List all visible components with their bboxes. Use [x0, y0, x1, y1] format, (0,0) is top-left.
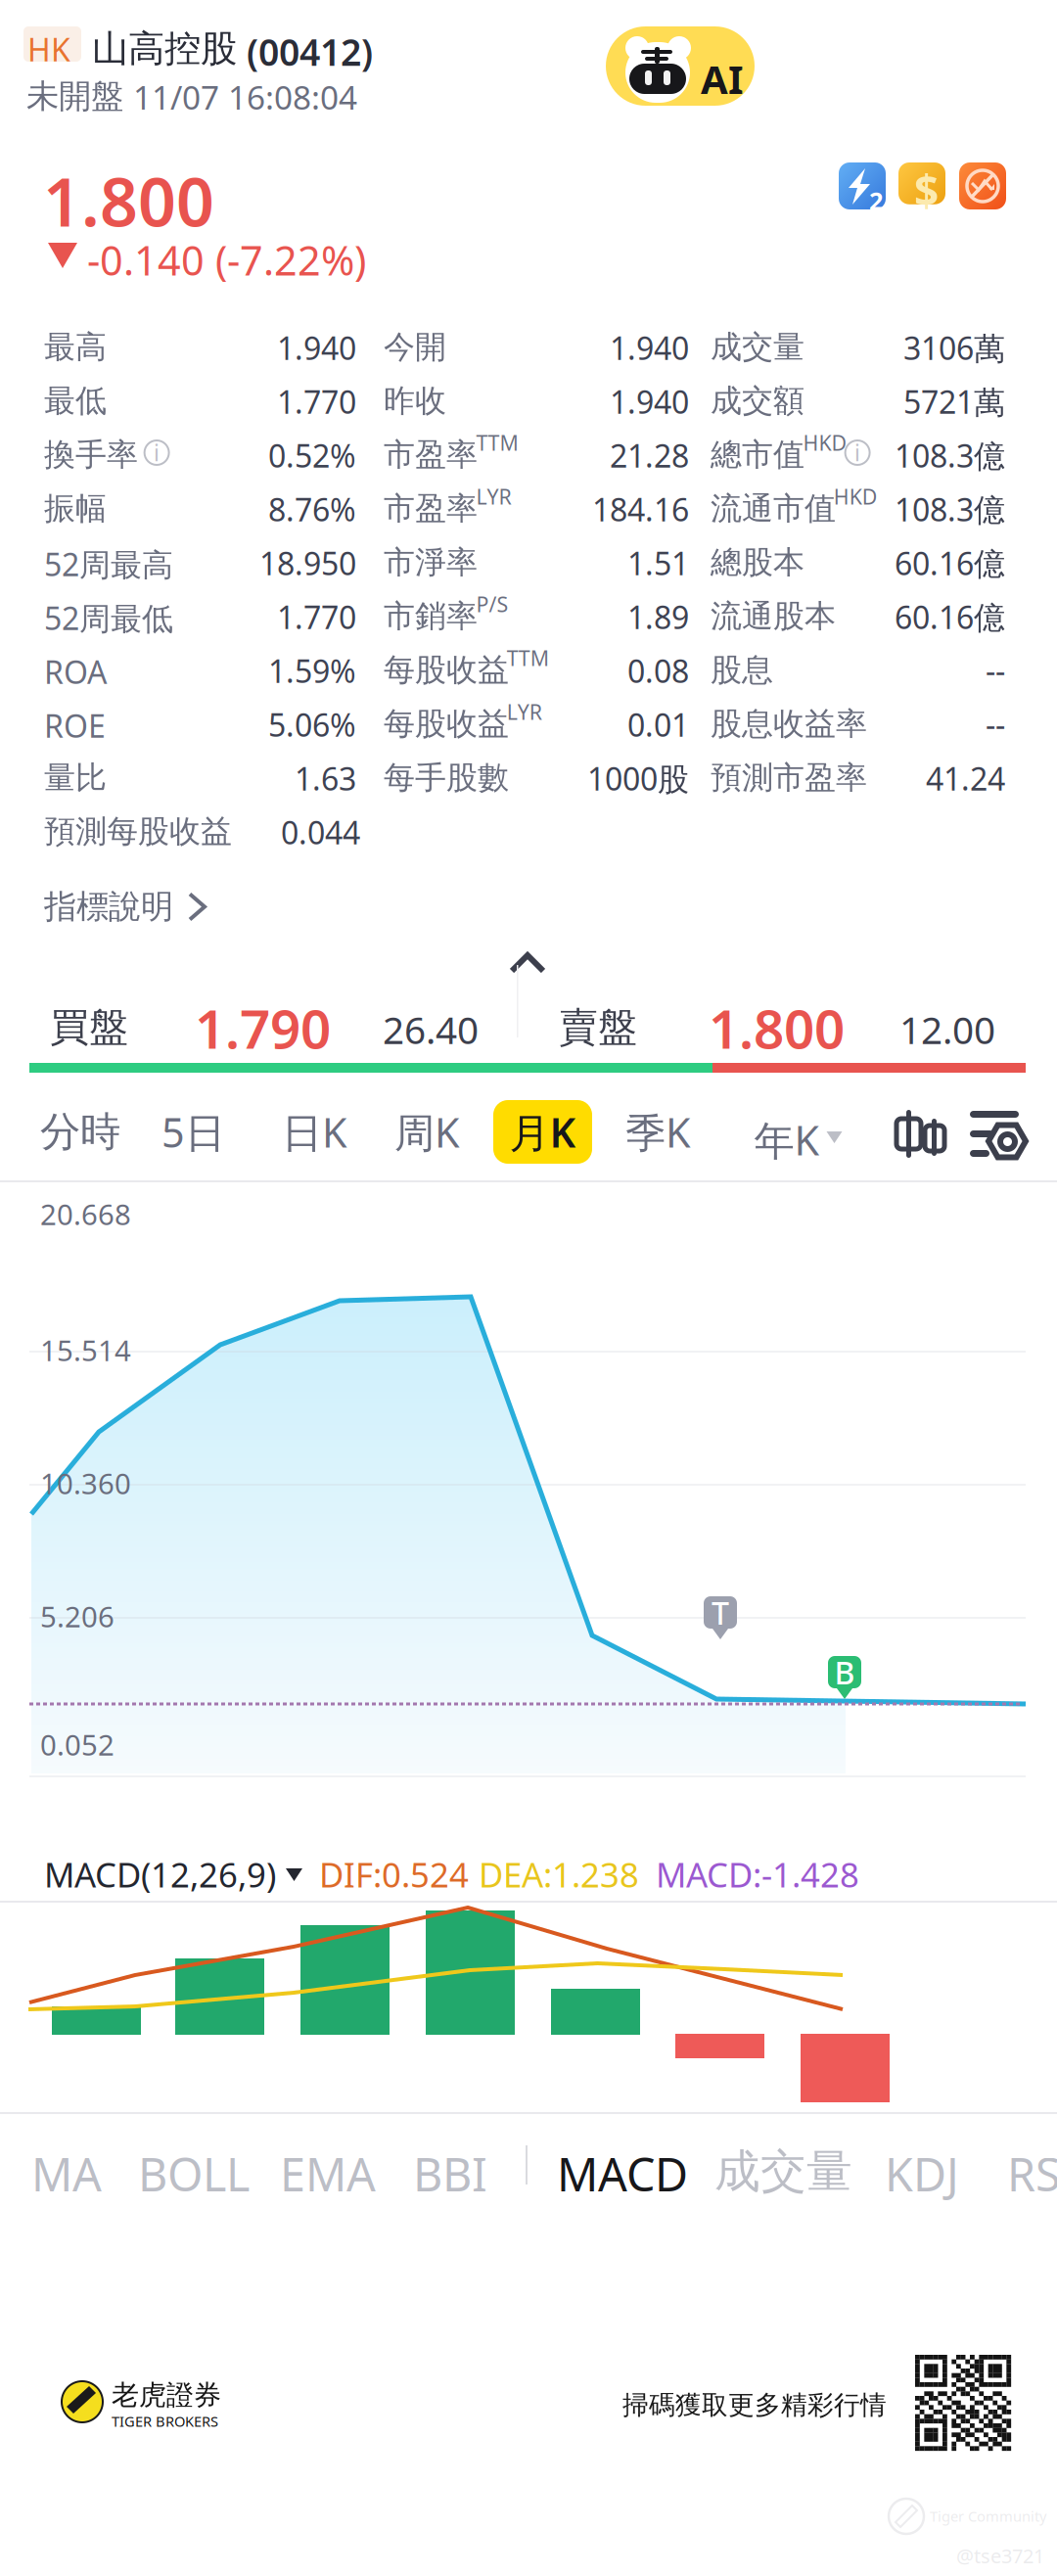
staticText: 流通股本: [711, 597, 836, 635]
staticText: 0.044: [281, 811, 360, 853]
button[interactable]: MACD: [0, 0, 155, 92]
staticText: 18.950: [259, 542, 356, 584]
button[interactable]: KDJ: [0, 0, 98, 92]
staticText: 2: [869, 184, 883, 217]
staticText: 量比: [44, 759, 107, 797]
staticText: 60.16億: [895, 596, 1005, 638]
staticText: 流通市值: [711, 489, 836, 528]
staticText: LYR: [507, 698, 542, 726]
staticText: 1.770: [277, 596, 356, 638]
button[interactable]: 周K: [0, 0, 66, 64]
staticText: 1.89: [627, 596, 689, 638]
staticText: RS: [1007, 2143, 1057, 2204]
staticText: P/S: [476, 590, 509, 618]
staticText: B: [834, 1651, 855, 1693]
staticText: 5日: [161, 1105, 225, 1159]
staticText: 1000股: [587, 758, 689, 799]
staticText: 總股本: [711, 543, 804, 582]
button[interactable]: BOLL: [0, 0, 135, 92]
staticText: 184.16: [592, 488, 689, 530]
staticText: 15.514: [40, 1331, 131, 1369]
staticText: 市盈率: [384, 436, 478, 474]
staticText: 0.01: [627, 704, 689, 745]
staticText: MACD(12,26,9): [44, 1852, 276, 1897]
staticText: 買盤: [50, 1003, 128, 1051]
staticText: 年K: [754, 1113, 820, 1167]
staticText: 周K: [394, 1105, 460, 1159]
staticText: 成交量: [714, 2143, 852, 2199]
staticText: 掃碼獲取更多精彩行情: [622, 2389, 887, 2421]
staticText: 季K: [625, 1105, 691, 1159]
button[interactable]: Short selling restricted: [0, 0, 47, 47]
button[interactable]: 年K: [0, 0, 98, 64]
staticText: 1.940: [610, 381, 689, 422]
staticText: MACD: [557, 2143, 688, 2204]
staticText: 108.3億: [895, 435, 1005, 476]
staticText: 1.51: [627, 542, 689, 584]
button[interactable]: MA: [0, 0, 94, 92]
staticText: 賣盤: [559, 1003, 637, 1051]
button[interactable]: 分時: [0, 0, 80, 64]
staticText: DEA:1.238: [479, 1852, 639, 1897]
staticText: 1.940: [610, 327, 689, 368]
staticText: 山高控股: [92, 26, 237, 71]
staticText: --: [986, 650, 1005, 691]
staticText: 預測每股收益: [44, 812, 232, 851]
button[interactable]: 5日: [0, 0, 64, 64]
staticText: @tse3721: [956, 2543, 1044, 2569]
staticText: 分時: [40, 1107, 120, 1157]
staticText: 月K: [509, 1105, 576, 1159]
staticText: MA: [31, 2143, 102, 2204]
staticText: 21.28: [610, 435, 689, 476]
staticText: 成交額: [711, 382, 804, 420]
button[interactable]: 日K: [0, 0, 66, 64]
staticText: HK: [27, 28, 70, 70]
staticText: 成交量: [711, 328, 804, 366]
staticText: 昨收: [384, 382, 446, 420]
staticText: 1.940: [277, 327, 356, 368]
staticText: 指標說明: [44, 887, 173, 927]
staticText: KDJ: [885, 2143, 959, 2204]
button[interactable]: Dividend: [0, 0, 47, 47]
button[interactable]: 月K: [0, 0, 99, 64]
staticText: 每股收益: [384, 705, 509, 743]
button[interactable]: Expand order book: [0, 0, 69, 55]
staticText: 1.59%: [268, 650, 356, 691]
staticText: $: [914, 161, 939, 218]
staticText: 最低: [44, 382, 107, 420]
staticText: 52周最低: [44, 597, 173, 639]
staticText: --: [986, 704, 1005, 745]
button[interactable]: AI assistant: [0, 0, 149, 79]
button[interactable]: EMA: [0, 0, 119, 92]
staticText: HKD: [834, 483, 878, 510]
staticText: 108.3億: [895, 488, 1005, 530]
staticText: BBI: [413, 2143, 487, 2204]
button[interactable]: BBI: [0, 0, 98, 92]
button[interactable]: 指標說明: [0, 0, 179, 60]
staticText: 今開: [384, 328, 446, 366]
staticText: TTM: [476, 429, 518, 456]
button[interactable]: 成交量: [0, 0, 161, 87]
staticText: 0.52%: [268, 435, 356, 476]
staticText: 股息: [711, 651, 773, 689]
button[interactable]: 季K: [0, 0, 66, 64]
staticText: 每手股數: [384, 759, 509, 797]
staticText: 60.16億: [895, 542, 1005, 584]
staticText: T: [712, 1592, 729, 1633]
button[interactable]: Chart style: [0, 0, 71, 71]
staticText: 股息收益率: [711, 705, 867, 743]
button[interactable]: RS: [0, 0, 77, 92]
staticText: 26.40: [383, 1004, 479, 1054]
staticText: i: [855, 438, 860, 467]
staticText: HKD: [803, 429, 847, 456]
staticText: TTM: [507, 644, 549, 672]
staticText: 5721萬: [903, 381, 1005, 422]
button[interactable]: Margin trading: [0, 0, 47, 47]
staticText: DIF:0.524: [319, 1852, 469, 1897]
staticText: 0.052: [40, 1725, 115, 1764]
staticText: 10.360: [40, 1464, 131, 1502]
button[interactable]: Chart settings: [0, 0, 79, 72]
staticText: -0.140 (-7.22%): [87, 233, 366, 287]
staticText: 20.668: [40, 1195, 131, 1233]
staticText: 8.76%: [268, 488, 356, 530]
